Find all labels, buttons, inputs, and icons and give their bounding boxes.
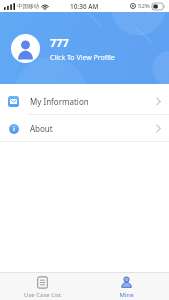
staticText: About: [30, 123, 156, 134]
staticText: 中国移动: [17, 3, 39, 10]
button[interactable]: My Information: [0, 88, 169, 114]
button[interactable]: 777: [0, 12, 169, 84]
other: Open About: [156, 124, 161, 133]
staticText: 52%: [138, 2, 150, 10]
staticText: 777: [50, 35, 69, 50]
staticText: My Information: [30, 96, 156, 107]
staticText: Mine: [119, 291, 134, 299]
button[interactable]: About: [0, 115, 169, 141]
staticText: 10:36 AM: [70, 2, 99, 11]
button[interactable]: Use Case List: [0, 273, 84, 300]
button[interactable]: Mine: [84, 273, 169, 300]
staticText: Use Case List: [24, 291, 61, 299]
staticText: Click To View Profile: [50, 53, 115, 63]
other: Open My Information: [156, 97, 161, 106]
